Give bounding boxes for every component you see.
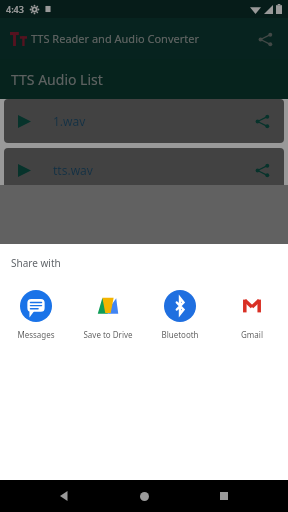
button[interactable]: Gmail xyxy=(216,288,288,342)
staticText: Gmail xyxy=(241,329,263,340)
staticText: Share with xyxy=(11,256,61,270)
staticText: tts.wav xyxy=(53,162,93,178)
staticText: 1.wav xyxy=(53,113,86,129)
staticText: Messages xyxy=(17,329,55,340)
button[interactable]: Recents xyxy=(209,481,239,511)
staticText: 4:43 xyxy=(6,3,24,15)
button[interactable]: 1.wav xyxy=(4,99,284,143)
button[interactable]: Home xyxy=(129,481,159,511)
button[interactable]: tts.wav xyxy=(4,148,284,192)
staticText: Save to Drive xyxy=(83,329,133,340)
button[interactable]: Save to Drive xyxy=(72,288,144,342)
staticText: TTS Reader and Audio Converter xyxy=(31,31,199,46)
staticText: TTS Audio List xyxy=(11,70,103,89)
button[interactable]: Messages xyxy=(0,288,72,342)
staticText: Bluetooth xyxy=(161,329,199,340)
button[interactable]: Bluetooth xyxy=(144,288,216,342)
button[interactable]: Back xyxy=(50,481,80,511)
button[interactable]: Share xyxy=(252,26,278,52)
